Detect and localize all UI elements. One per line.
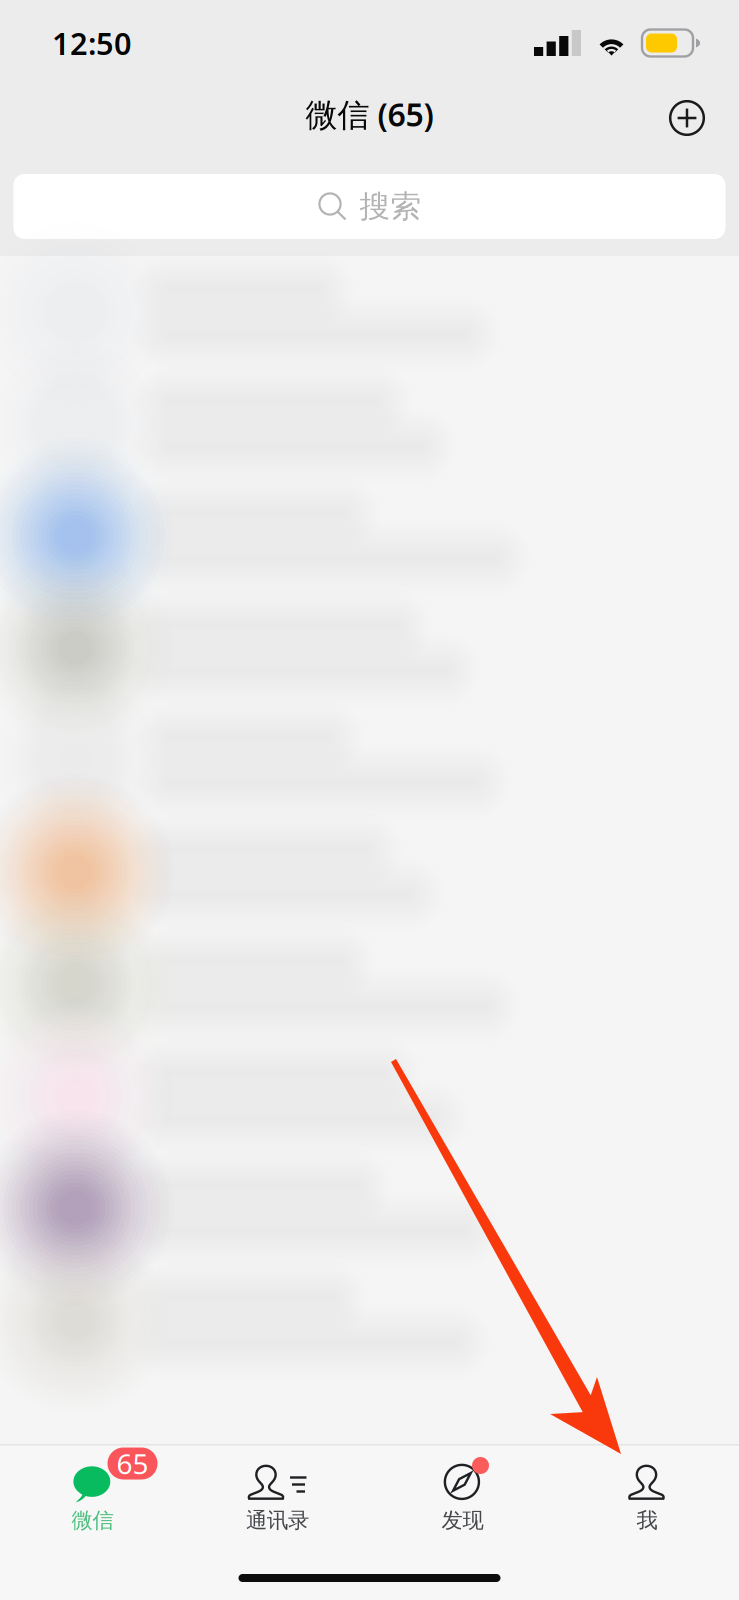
- staticText: 12:50: [52, 23, 132, 63]
- staticText: 65: [116, 1445, 148, 1482]
- button[interactable]: 65: [0, 1459, 185, 1549]
- button[interactable]: 我: [555, 1459, 739, 1549]
- staticText: 我: [636, 1507, 657, 1534]
- staticText: 微信 (65): [305, 93, 433, 135]
- button[interactable]: 通讯录: [185, 1459, 370, 1549]
- staticText: 发现: [441, 1507, 483, 1534]
- button[interactable]: 搜索: [13, 174, 725, 239]
- staticText: 搜索: [359, 188, 421, 225]
- button[interactable]: 添加: [649, 86, 725, 150]
- staticText: 通讯录: [246, 1507, 309, 1534]
- button[interactable]: 发现: [370, 1459, 555, 1549]
- staticText: 微信: [71, 1507, 113, 1534]
